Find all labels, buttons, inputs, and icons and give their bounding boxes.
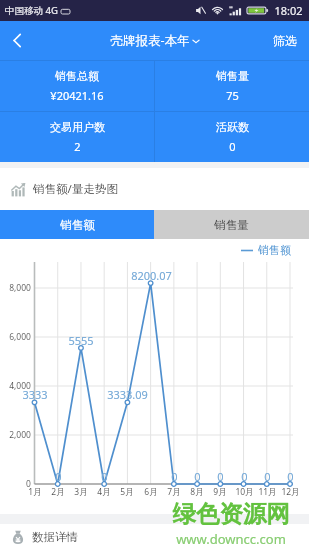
- staticText: 1月: [28, 486, 42, 498]
- staticText: www.downcc.com: [176, 530, 286, 548]
- staticText: 销售额/量走势图: [33, 181, 118, 197]
- staticText: 3月: [74, 486, 88, 498]
- staticText: 数据详情: [32, 530, 78, 544]
- staticText: 5月: [120, 486, 134, 498]
- button[interactable]: 销售量: [154, 210, 309, 239]
- staticText: 3333.09: [107, 387, 148, 402]
- staticText: 销售额: [60, 218, 95, 232]
- staticText: 中国移动 4G: [5, 4, 58, 17]
- staticText: 0: [217, 469, 224, 484]
- staticText: 7月: [167, 486, 181, 498]
- staticText: 75: [226, 88, 239, 103]
- staticText: 0: [171, 469, 178, 484]
- staticText: 0: [194, 469, 201, 484]
- staticText: 4,000: [9, 380, 31, 392]
- staticText: 6,000: [9, 331, 31, 343]
- button[interactable]: Back: [0, 21, 34, 60]
- button[interactable]: 数据详情: [0, 524, 309, 550]
- staticText: 0: [55, 469, 62, 484]
- button[interactable]: 销售量: [155, 61, 309, 111]
- staticText: 0: [264, 469, 271, 484]
- staticText: 0: [229, 139, 236, 154]
- staticText: 5555: [68, 333, 94, 348]
- staticText: 2: [74, 139, 81, 154]
- staticText: 11月: [258, 486, 277, 498]
- button[interactable]: 销售额: [0, 210, 154, 239]
- staticText: 3333: [22, 387, 48, 402]
- staticText: 0: [241, 469, 248, 484]
- staticText: 2,000: [9, 429, 31, 441]
- staticText: 18:02: [274, 3, 303, 18]
- staticText: 8月: [190, 486, 204, 498]
- button[interactable]: 交易用户数: [0, 112, 154, 162]
- button[interactable]: 活跃数: [155, 112, 309, 162]
- staticText: 12月: [281, 486, 300, 498]
- button[interactable]: 销售总额: [0, 61, 154, 111]
- staticText: 壳牌报表-本年: [110, 32, 190, 49]
- staticText: 销售量: [216, 69, 249, 83]
- staticText: 筛选: [273, 33, 297, 48]
- staticText: 4月: [97, 486, 111, 498]
- staticText: 9月: [213, 486, 227, 498]
- staticText: 2月: [51, 486, 65, 498]
- staticText: ¥20421.16: [50, 88, 104, 103]
- staticText: 6月: [144, 486, 158, 498]
- staticText: 0: [101, 469, 108, 484]
- staticText: 0: [26, 478, 31, 490]
- button[interactable]: 销售额/量走势图: [0, 168, 309, 210]
- staticText: 销售量: [214, 218, 249, 232]
- staticText: 8200.07: [131, 268, 172, 283]
- button[interactable]: 筛选: [261, 21, 309, 60]
- staticText: 销售总额: [55, 69, 99, 83]
- staticText: 0: [287, 469, 294, 484]
- button[interactable]: 壳牌报表-本年: [104, 26, 206, 55]
- staticText: 交易用户数: [50, 120, 105, 134]
- staticText: 活跃数: [216, 120, 249, 134]
- staticText: 8,000: [9, 282, 31, 294]
- staticText: 绿色资源网: [172, 499, 290, 529]
- staticText: 销售额: [258, 243, 291, 257]
- staticText: 10月: [235, 486, 254, 498]
